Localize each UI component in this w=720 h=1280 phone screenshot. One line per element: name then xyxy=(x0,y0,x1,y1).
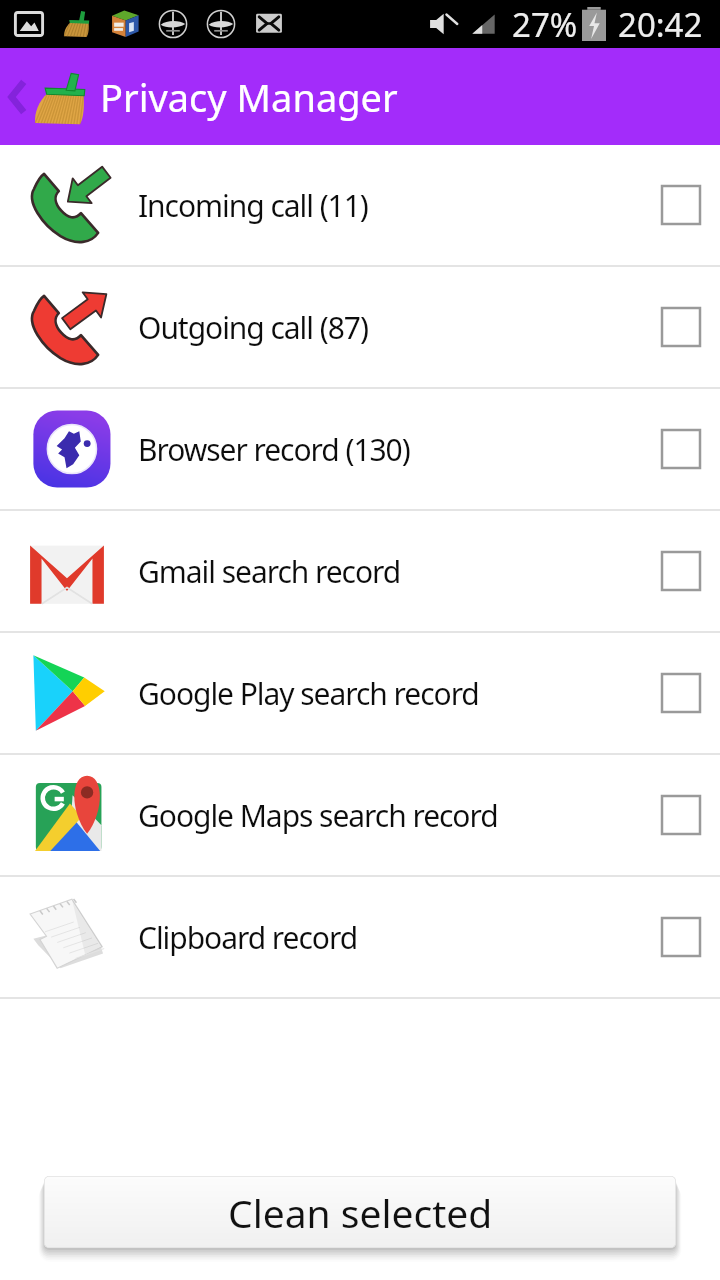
staticText: 20:42 xyxy=(618,2,703,47)
staticText: Clean selected xyxy=(228,1186,493,1239)
button[interactable]: Select Incoming call (11) xyxy=(662,186,700,224)
button[interactable]: Incoming call (11) xyxy=(0,145,720,265)
staticText: Incoming call (11) xyxy=(138,185,368,226)
button[interactable]: Google Play search record xyxy=(0,633,720,753)
staticText: Outgoing call (87) xyxy=(138,307,368,348)
button[interactable]: Select Gmail search record xyxy=(662,552,700,590)
button[interactable]: Gmail search record xyxy=(0,511,720,631)
staticText: Gmail search record xyxy=(138,551,401,592)
staticText: Google Maps search record xyxy=(138,795,498,836)
staticText: Clipboard record xyxy=(138,917,358,958)
staticText: Browser record (130) xyxy=(138,429,410,470)
button[interactable]: Clean selected xyxy=(44,1176,676,1248)
button[interactable]: Back xyxy=(5,48,29,145)
button[interactable]: Outgoing call (87) xyxy=(0,267,720,387)
button[interactable]: Select Google Play search record xyxy=(662,674,700,712)
button[interactable]: Select Outgoing call (87) xyxy=(662,308,700,346)
button[interactable]: Select Clipboard record xyxy=(662,918,700,956)
staticText: Google Play search record xyxy=(138,673,479,714)
button[interactable]: Clipboard record xyxy=(0,877,720,997)
button[interactable]: Google Maps search record xyxy=(0,755,720,875)
button[interactable]: Browser record (130) xyxy=(0,389,720,509)
staticText: 27% xyxy=(512,2,578,47)
button[interactable]: Select Browser record (130) xyxy=(662,430,700,468)
staticText: Privacy Manager xyxy=(100,71,398,123)
button[interactable]: Select Google Maps search record xyxy=(662,796,700,834)
